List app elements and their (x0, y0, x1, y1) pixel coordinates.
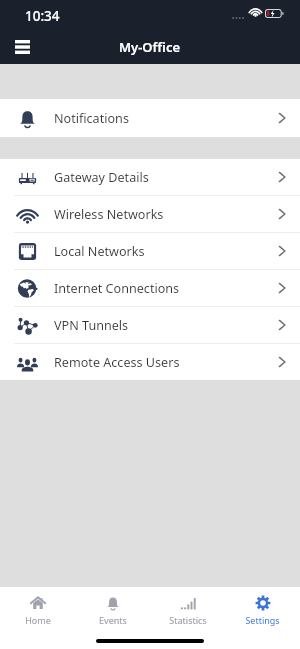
staticText: Internet Connections (54, 280, 180, 297)
button[interactable]: VPN Tunnels (0, 307, 300, 343)
staticText: Local Networks (54, 243, 145, 260)
button[interactable]: Events (75, 587, 150, 633)
staticText: 10:34 (25, 7, 60, 25)
button[interactable]: Home (0, 587, 75, 633)
button[interactable]: Statistics (150, 587, 225, 633)
button[interactable]: Settings (225, 587, 300, 633)
staticText: My-Office (119, 38, 181, 56)
staticText: Wireless Networks (54, 206, 164, 223)
button[interactable]: Remote Access Users (0, 344, 300, 380)
staticText: Home (25, 614, 51, 626)
staticText: Gateway Details (54, 169, 149, 186)
staticText: Notifications (54, 110, 129, 127)
button[interactable]: Gateway Details (0, 159, 300, 195)
staticText: Remote Access Users (54, 354, 180, 371)
staticText: Settings (245, 614, 280, 626)
button[interactable]: Wireless Networks (0, 196, 300, 232)
button[interactable]: Local Networks (0, 233, 300, 269)
staticText: Statistics (169, 614, 207, 626)
staticText: VPN Tunnels (54, 317, 129, 334)
button[interactable]: Notifications (0, 99, 300, 137)
button[interactable]: Internet Connections (0, 270, 300, 306)
staticText: Events (99, 614, 127, 626)
button[interactable]: Open navigation menu (3, 28, 42, 64)
